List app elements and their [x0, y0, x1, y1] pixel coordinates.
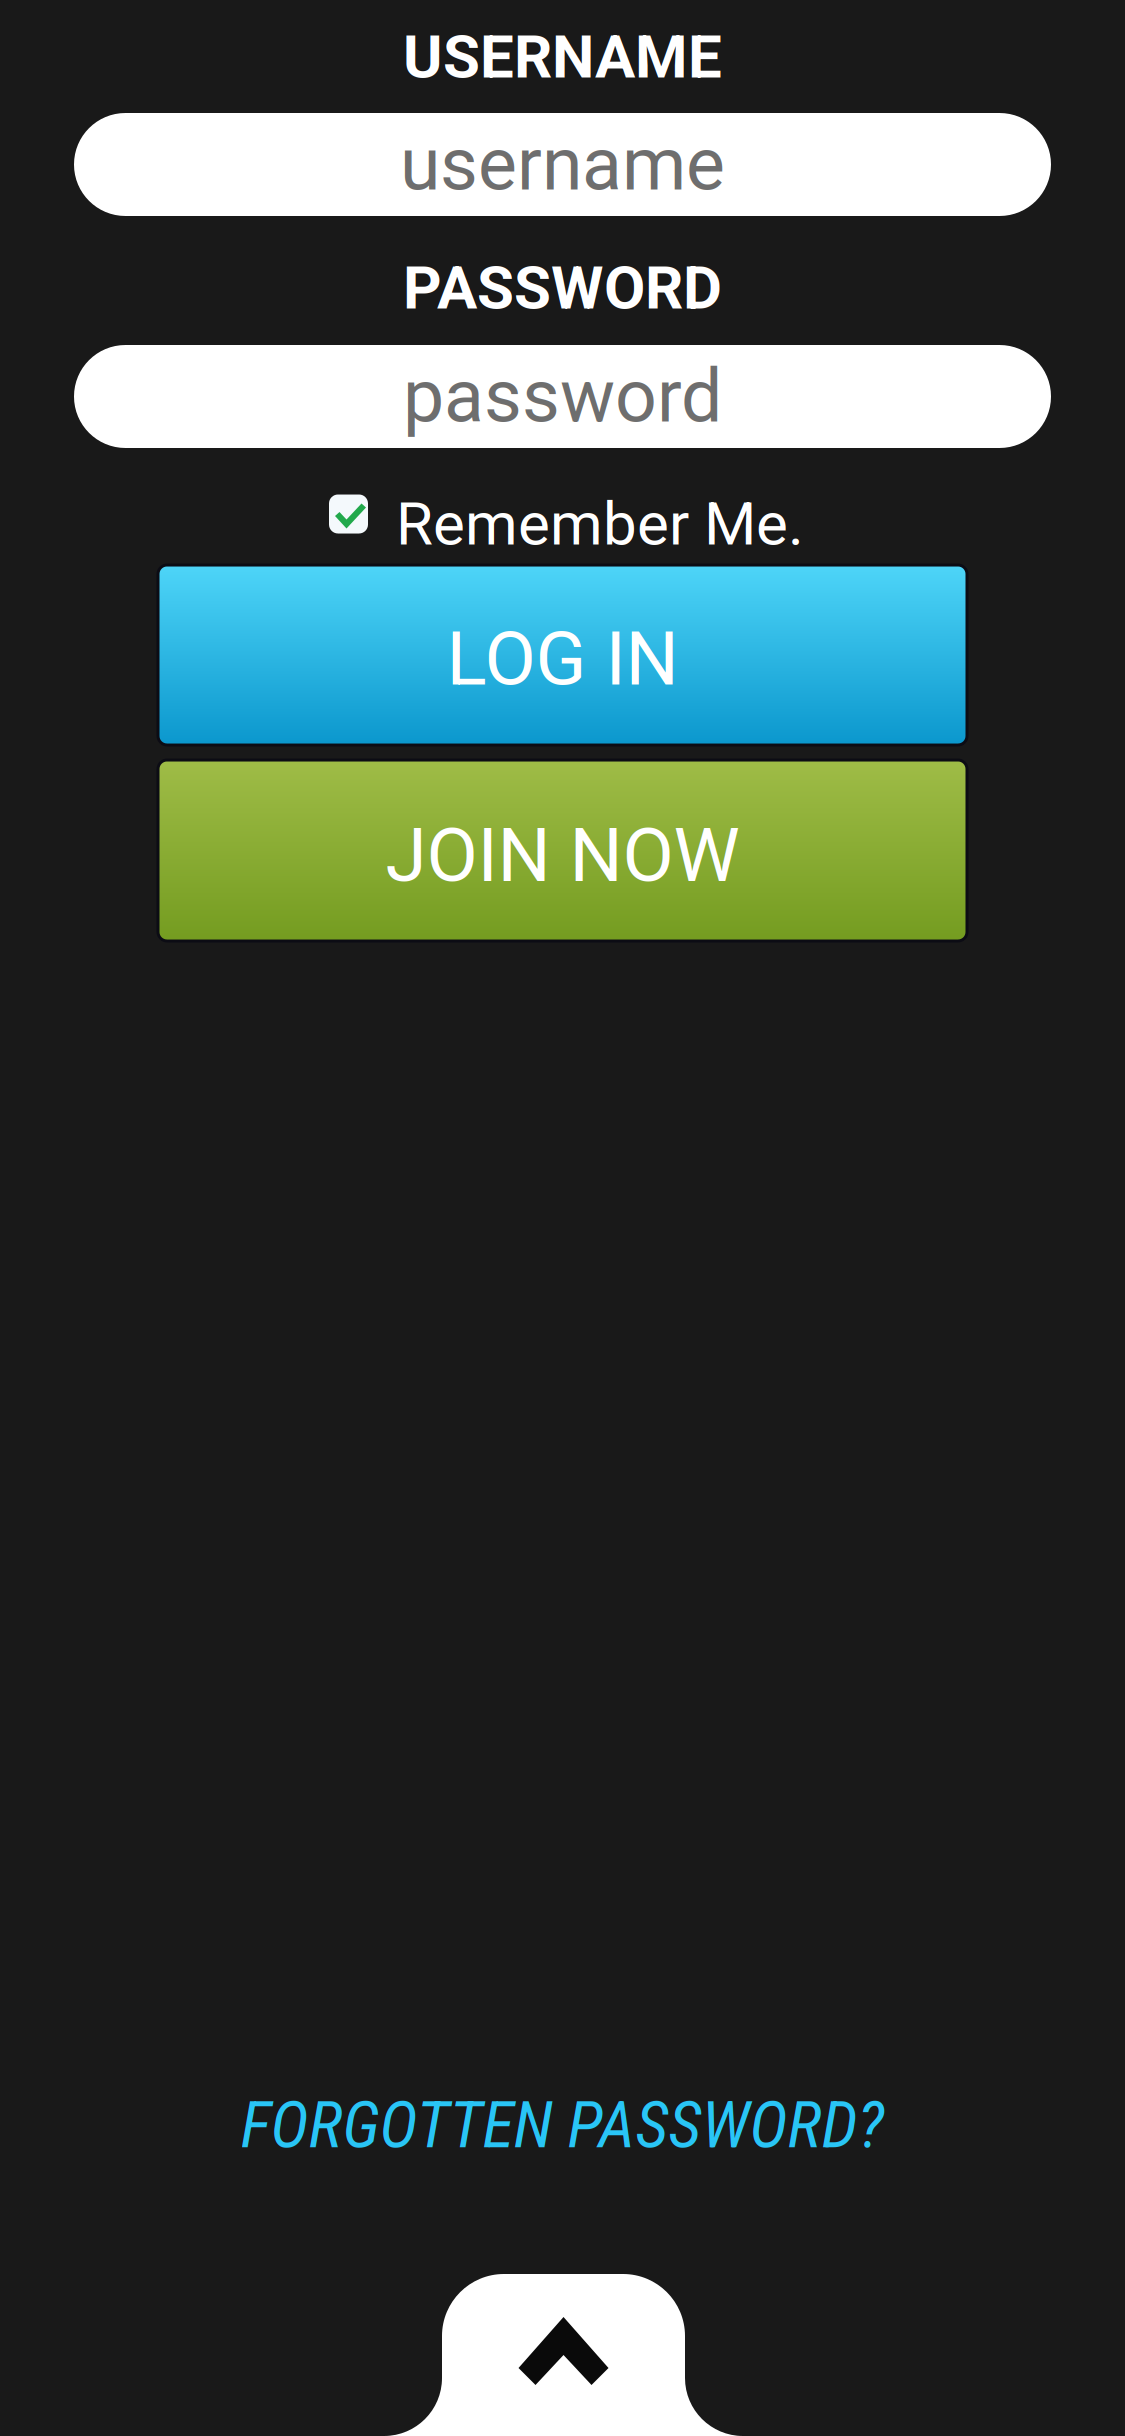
button[interactable]: FORGOTTEN PASSWORD?	[0, 2085, 1125, 2165]
button[interactable]: Show more	[384, 2274, 743, 2436]
button[interactable]: Remember Me.	[329, 478, 799, 550]
staticText: USERNAME	[403, 22, 722, 92]
staticText: LOG IN	[446, 615, 678, 703]
staticText: FORGOTTEN PASSWORD?	[240, 2087, 884, 2163]
button[interactable]: JOIN NOW	[158, 760, 967, 941]
button[interactable]: LOG IN	[158, 565, 967, 745]
staticText: password	[403, 353, 722, 439]
button[interactable]: username	[74, 113, 1051, 216]
staticText: PASSWORD	[403, 253, 722, 323]
button[interactable]: password	[74, 345, 1051, 448]
staticText: username	[400, 121, 725, 207]
staticText: JOIN NOW	[385, 812, 739, 899]
staticText: Remember Me.	[396, 489, 804, 559]
